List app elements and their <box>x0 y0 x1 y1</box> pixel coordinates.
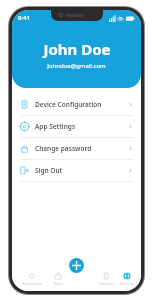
button[interactable]: App Settings <box>12 116 141 137</box>
button[interactable]: Store <box>45 272 71 286</box>
button[interactable]: Add <box>69 258 84 273</box>
staticText: Device Configuration <box>35 100 102 109</box>
button[interactable]: Sign Out <box>12 160 141 181</box>
staticText: Favourites <box>22 281 42 286</box>
staticText: App Settings <box>35 122 76 131</box>
staticText: 9:41 <box>18 14 30 22</box>
staticText: Change password <box>35 144 92 153</box>
button[interactable]: Favourites <box>19 272 45 286</box>
staticText: John Doe <box>43 39 111 59</box>
staticText: Johndoe@gmail.com <box>47 62 106 70</box>
button[interactable]: Account <box>119 272 134 291</box>
staticText: Devices <box>99 281 114 286</box>
button[interactable]: Devices <box>93 272 119 286</box>
staticText: Account <box>119 281 134 291</box>
button[interactable]: Change password <box>12 138 141 159</box>
staticText: Sign Out <box>35 166 63 175</box>
staticText: Store <box>53 281 63 286</box>
button[interactable]: Device Configuration <box>12 94 141 115</box>
